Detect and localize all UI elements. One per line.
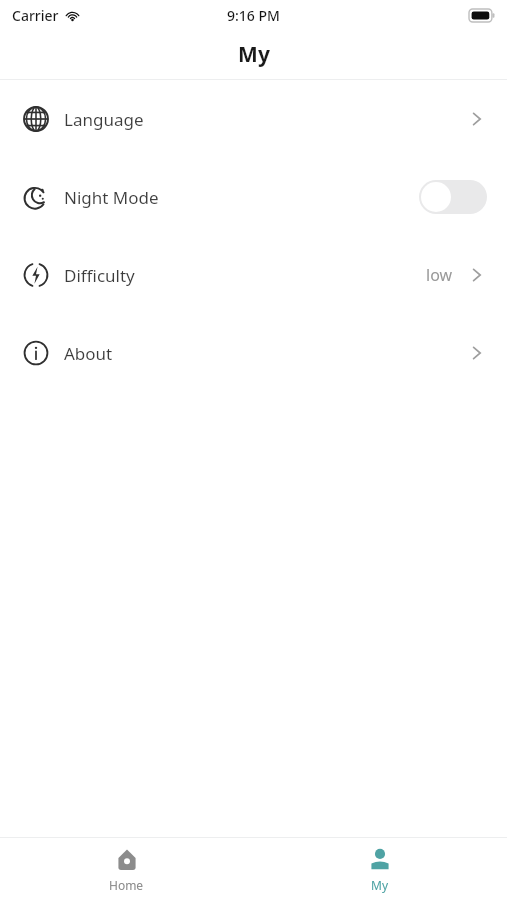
button[interactable]: My [253, 838, 507, 900]
staticText: My [371, 877, 389, 893]
button[interactable]: About [0, 314, 507, 392]
staticText: Night Mode [64, 186, 159, 209]
staticText: Carrier [12, 6, 59, 25]
staticText: Home [109, 877, 144, 893]
button[interactable]: Difficulty [0, 236, 507, 314]
button[interactable]: Night Mode [0, 158, 507, 236]
staticText: About [64, 342, 113, 365]
other: Open [467, 265, 487, 285]
staticText: My [238, 40, 270, 69]
button[interactable]: Night Mode toggle [419, 180, 487, 214]
staticText: low [426, 264, 453, 286]
button[interactable]: Home [0, 838, 253, 900]
staticText: 9:16 PM [227, 6, 280, 25]
other: Open [467, 343, 487, 363]
other: Open [467, 109, 487, 129]
staticText: Language [64, 108, 144, 131]
button[interactable]: Language [0, 80, 507, 158]
staticText: Difficulty [64, 264, 135, 287]
